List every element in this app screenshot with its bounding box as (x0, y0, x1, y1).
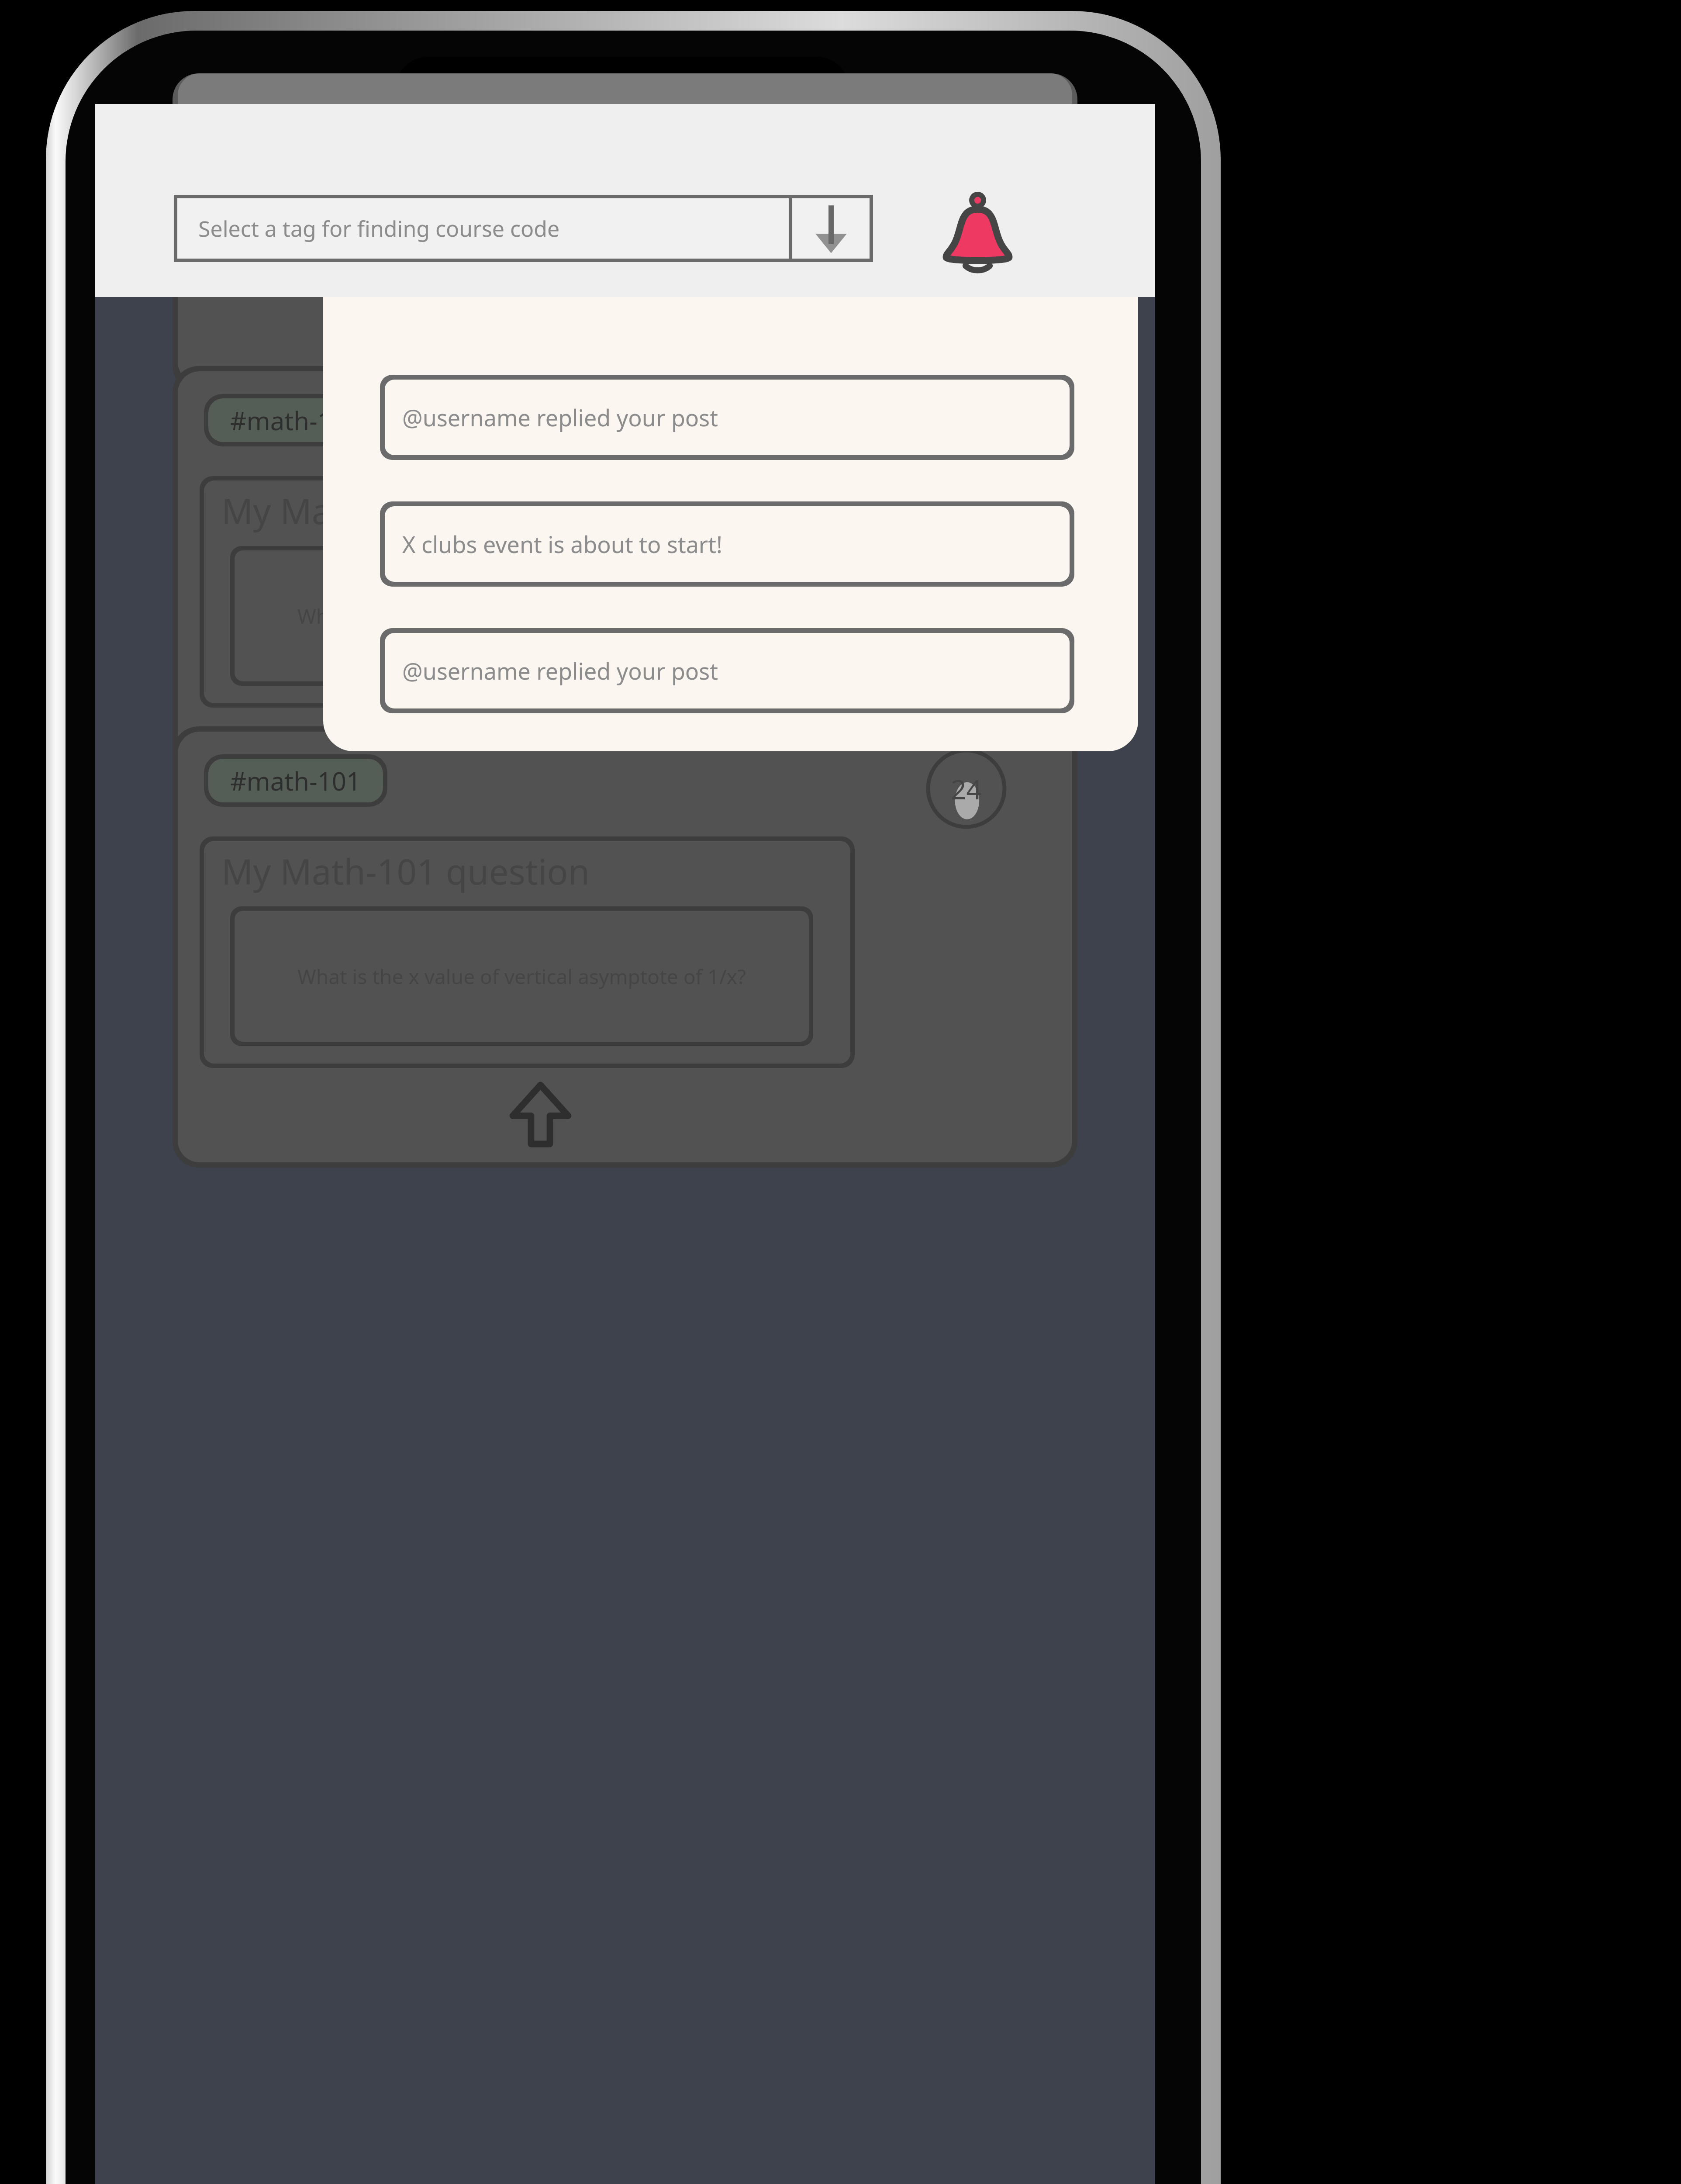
button[interactable]: Upvote (503, 1077, 577, 1151)
button[interactable]: Notifications (927, 187, 1028, 279)
staticText: #math-101 (230, 764, 361, 798)
button[interactable]: 24 replies (926, 748, 1007, 829)
staticText: @username replied your post (402, 402, 718, 433)
button[interactable]: @username replied your post (380, 375, 1074, 460)
button[interactable]: #math-101 (173, 366, 1077, 807)
button[interactable]: X clubs event is about to start! (380, 501, 1074, 587)
button[interactable]: Select a tag for finding course code (174, 195, 873, 262)
staticText: What is the x value of vertical asymptot… (297, 602, 746, 630)
staticText: My Math-101 question (221, 847, 590, 895)
button[interactable]: #math-101 (173, 726, 1077, 1168)
button[interactable]: #math-101 (204, 754, 387, 807)
button[interactable]: #math-101 (204, 394, 387, 446)
button[interactable]: Open tag list (792, 198, 870, 259)
staticText: @username replied your post (402, 655, 718, 686)
button[interactable]: @username replied your post (380, 628, 1074, 713)
staticText: Select a tag for finding course code (198, 214, 560, 243)
button[interactable]: Upvote (503, 716, 577, 791)
staticText: X clubs event is about to start! (402, 529, 723, 560)
staticText: My Math-101 question (221, 487, 590, 534)
staticText: 24 (951, 771, 982, 807)
staticText: #math-101 (230, 403, 361, 438)
staticText: What is the x value of vertical asymptot… (297, 963, 746, 990)
